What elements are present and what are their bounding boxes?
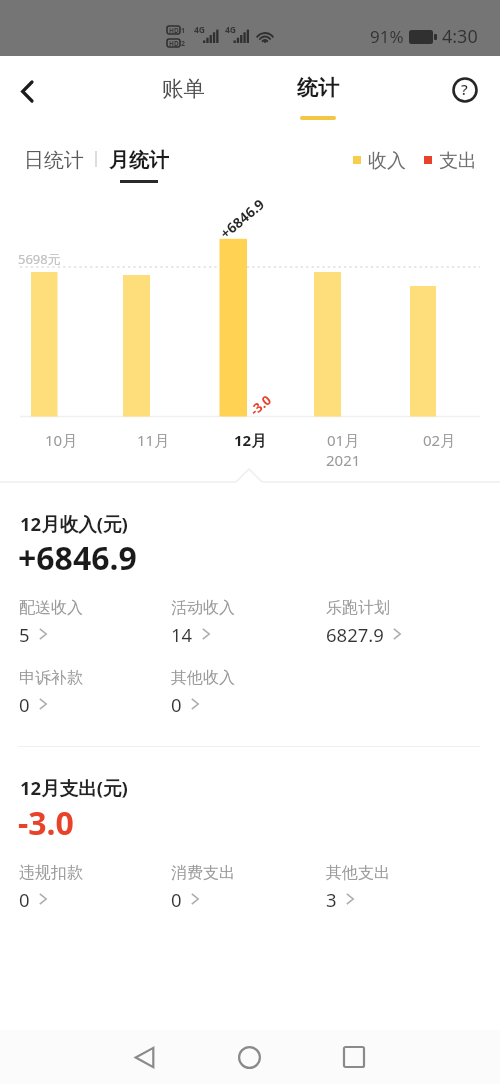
staticText: 消费支出 [171, 863, 235, 883]
staticText: 其他支出 [326, 863, 390, 883]
staticText: 支出 [439, 149, 477, 173]
staticText: 2 [181, 39, 186, 49]
button[interactable]: Back [2, 67, 50, 115]
button[interactable]: 统计 [283, 75, 353, 127]
staticText: 10月 [45, 430, 78, 450]
staticText: 4G [194, 24, 206, 36]
staticText: 违规扣款 [19, 863, 83, 883]
staticText: 5 [19, 622, 30, 647]
staticText: -3.0 [246, 391, 275, 419]
staticText: 4G [225, 24, 237, 36]
staticText: 配送收入 [19, 598, 83, 618]
staticText: +6846.9 [216, 194, 268, 242]
staticText: 12月 [234, 430, 267, 450]
staticText: 4:30 [442, 24, 478, 49]
staticText: 12月收入(元) [20, 511, 128, 536]
button[interactable]: Help [442, 67, 487, 112]
button[interactable]: 日统计 [24, 148, 84, 173]
staticText: -3.0 [18, 801, 74, 845]
staticText: 01月 [327, 430, 360, 450]
staticText: 5698元 [18, 250, 61, 268]
staticText: 其他收入 [171, 668, 235, 688]
button[interactable]: 违规扣款 [19, 863, 169, 912]
staticText: 2021 [326, 450, 361, 470]
staticText: 活动收入 [171, 598, 235, 618]
staticText: 0 [171, 692, 182, 717]
staticText: 乐跑计划 [326, 598, 390, 618]
button[interactable]: 乐跑计划 [326, 598, 476, 647]
staticText: 3 [326, 887, 337, 912]
staticText: 1 [181, 26, 186, 36]
staticText: 月统计 [109, 148, 169, 173]
button[interactable]: 配送收入 [19, 598, 169, 647]
staticText: ? [461, 79, 468, 99]
button[interactable]: 活动收入 [171, 598, 321, 647]
staticText: HD [169, 39, 179, 47]
staticText: 12月支出(元) [20, 775, 128, 800]
staticText: 0 [19, 692, 30, 717]
button[interactable]: 月统计 [109, 148, 169, 183]
staticText: 0 [19, 887, 30, 912]
staticText: 收入 [368, 149, 406, 173]
staticText: 申诉补款 [19, 668, 83, 688]
button[interactable]: Home [229, 1037, 269, 1077]
staticText: 0 [171, 887, 182, 912]
button[interactable]: 其他支出 [326, 863, 476, 912]
button[interactable]: Back [124, 1037, 164, 1077]
staticText: 统计 [297, 75, 339, 101]
staticText: HD [169, 26, 179, 34]
button[interactable]: 申诉补款 [19, 668, 169, 717]
button[interactable]: 账单 [145, 75, 221, 117]
staticText: 91% [370, 25, 404, 48]
button[interactable]: 消费支出 [171, 863, 321, 912]
staticText: +6846.9 [18, 536, 137, 580]
staticText: 02月 [423, 430, 456, 450]
button[interactable]: 其他收入 [171, 668, 321, 717]
staticText: 14 [171, 622, 193, 647]
staticText: 11月 [137, 430, 170, 450]
staticText: 账单 [162, 75, 205, 102]
staticText: 6827.9 [326, 622, 384, 647]
button[interactable]: Recents [334, 1037, 374, 1077]
staticText: 日统计 [24, 148, 84, 173]
